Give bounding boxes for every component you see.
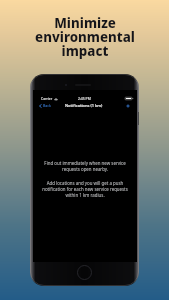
staticText: Carrier: [41, 96, 53, 101]
staticText: Back: [43, 103, 51, 108]
staticText: Minimize environmental impact: [35, 14, 135, 60]
button[interactable]: Back: [39, 101, 51, 110]
staticText: Notifications (1 km): [65, 103, 103, 108]
staticText: 2:45 PM: [78, 96, 91, 101]
button[interactable]: Add notification: [124, 102, 132, 110]
staticText: Add locations and you will get a push no…: [42, 180, 128, 198]
staticText: Find out immediately when new service re…: [44, 160, 126, 172]
